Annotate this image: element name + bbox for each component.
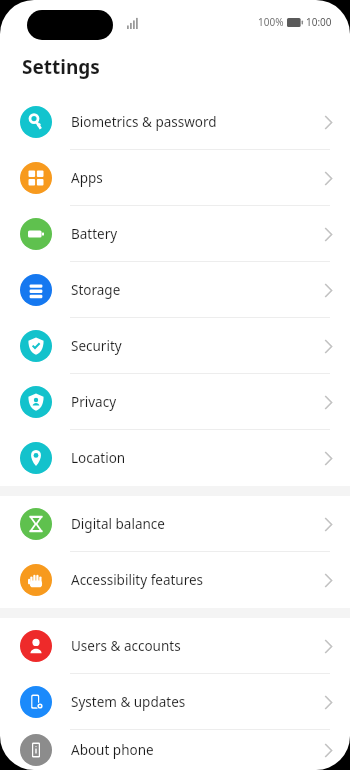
- button[interactable]: System & updates: [0, 674, 350, 730]
- staticText: Accessibility features: [71, 571, 204, 589]
- button[interactable]: Storage: [0, 262, 350, 318]
- staticText: Privacy: [71, 393, 117, 411]
- button[interactable]: Biometrics & password: [0, 94, 350, 150]
- button[interactable]: Apps: [0, 150, 350, 206]
- staticText: Location: [71, 449, 126, 467]
- staticText: Users & accounts: [71, 637, 181, 655]
- button[interactable]: Digital balance: [0, 496, 350, 552]
- staticText: Battery: [71, 225, 118, 243]
- staticText: Security: [71, 337, 122, 355]
- button[interactable]: Accessibility features: [0, 552, 350, 608]
- staticText: 10:00: [306, 15, 332, 29]
- staticText: 100%: [258, 15, 284, 29]
- staticText: Biometrics & password: [71, 113, 217, 131]
- staticText: Digital balance: [71, 515, 165, 533]
- button[interactable]: Privacy: [0, 374, 350, 430]
- staticText: Settings: [22, 54, 100, 80]
- staticText: Apps: [71, 169, 103, 187]
- staticText: About phone: [71, 741, 154, 759]
- button[interactable]: Battery: [0, 206, 350, 262]
- staticText: Storage: [71, 281, 121, 299]
- button[interactable]: Location: [0, 430, 350, 486]
- button[interactable]: Security: [0, 318, 350, 374]
- button[interactable]: Users & accounts: [0, 618, 350, 674]
- staticText: System & updates: [71, 693, 186, 711]
- button[interactable]: About phone: [0, 730, 350, 770]
